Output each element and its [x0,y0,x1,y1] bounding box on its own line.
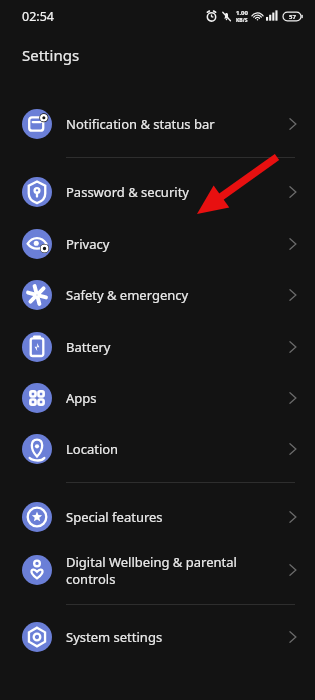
staticText: 57 [289,13,296,21]
staticText: Settings [22,45,80,65]
staticText: System settings [66,628,163,646]
button[interactable]: Notification & status bar [0,98,315,150]
staticText: Battery [66,338,111,356]
button[interactable]: System settings [0,612,315,662]
button[interactable]: Location [0,423,315,475]
button[interactable]: Privacy [0,218,315,269]
button[interactable]: Apps [0,373,315,423]
staticText: 02:54 [22,8,54,25]
staticText: Notification & status bar [66,115,215,133]
button[interactable]: Password & security [0,166,315,218]
staticText: Location [66,440,119,458]
button[interactable]: Battery [0,321,315,373]
staticText: Safety & emergency [66,286,189,304]
staticText: Privacy [66,235,110,253]
staticText: Digital Wellbeing & parental controls [66,553,281,588]
button[interactable]: Digital Wellbeing & parental controls [0,542,315,598]
staticText: Password & security [66,183,189,201]
button[interactable]: Safety & emergency [0,269,315,321]
staticText: Special features [66,508,163,526]
staticText: KB/S [236,17,248,24]
button[interactable]: Special features [0,491,315,542]
staticText: 1.00 [236,9,248,17]
staticText: Apps [66,389,97,407]
